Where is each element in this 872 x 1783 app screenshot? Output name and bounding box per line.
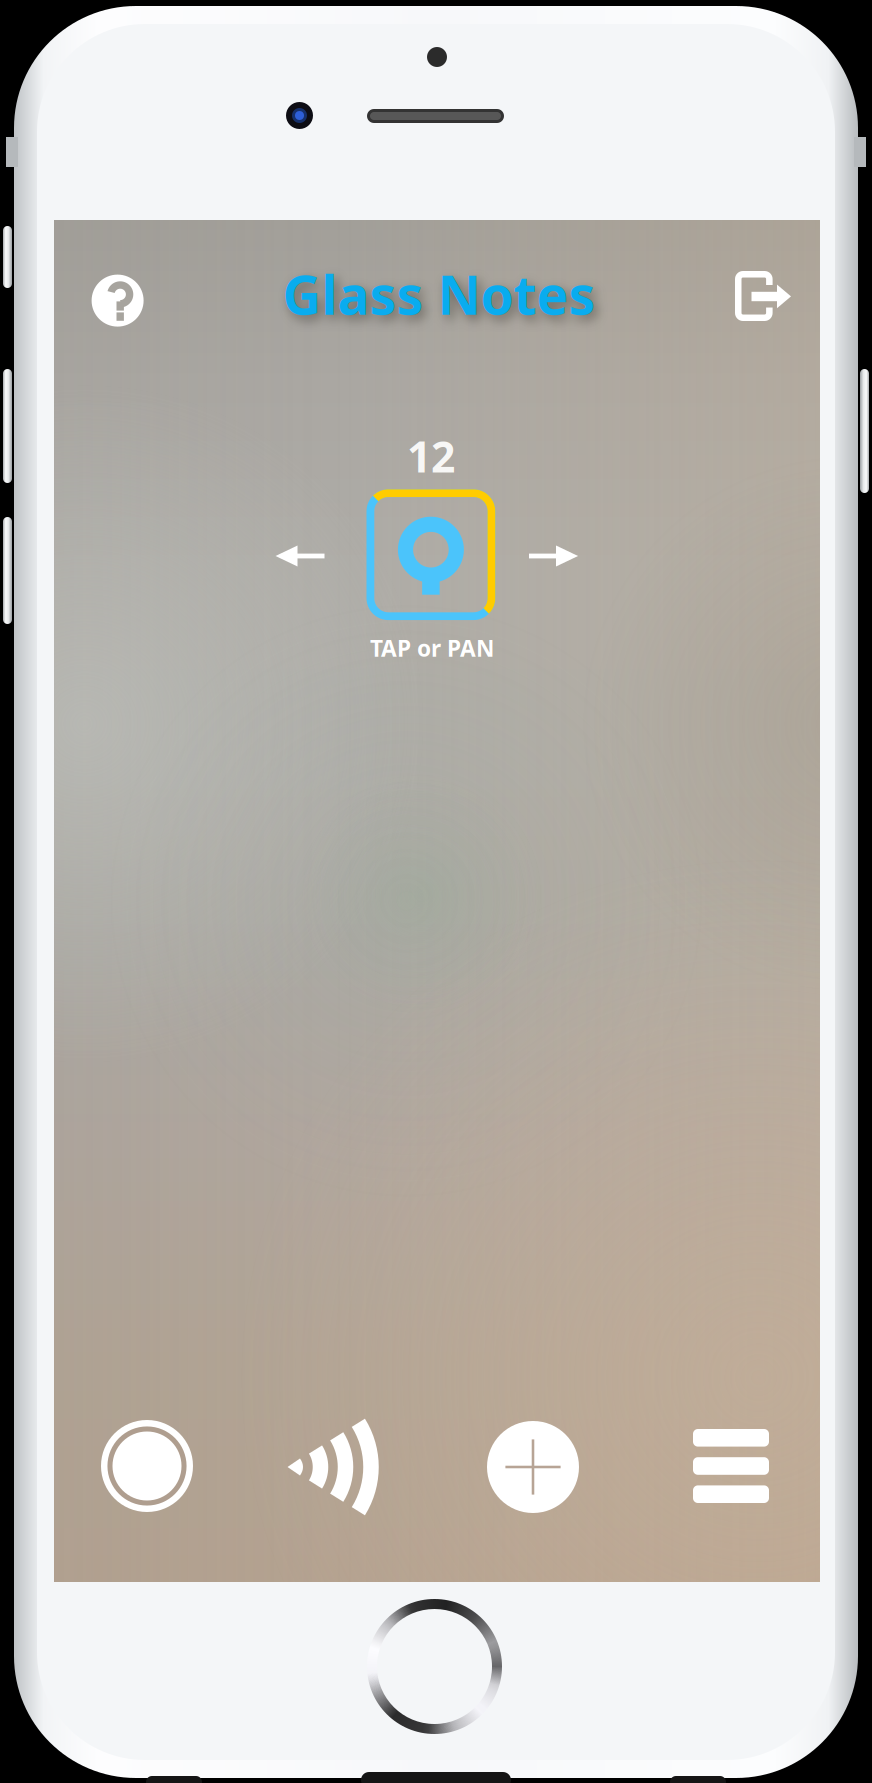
button[interactable]: Add note [477, 1411, 589, 1523]
button[interactable]: Previous [275, 545, 324, 566]
button[interactable]: Next [529, 545, 578, 566]
staticText: TAP or PAN [370, 633, 494, 663]
button[interactable]: Glass Notes [229, 258, 649, 330]
staticText: 12 [407, 428, 455, 484]
button[interactable]: Log out [725, 258, 801, 334]
staticText: Glass Notes [282, 259, 595, 329]
button[interactable]: Menu [675, 1415, 787, 1517]
button[interactable]: Record [91, 1410, 203, 1522]
button[interactable]: Help [80, 263, 156, 339]
button[interactable]: Play audio [277, 1411, 389, 1523]
